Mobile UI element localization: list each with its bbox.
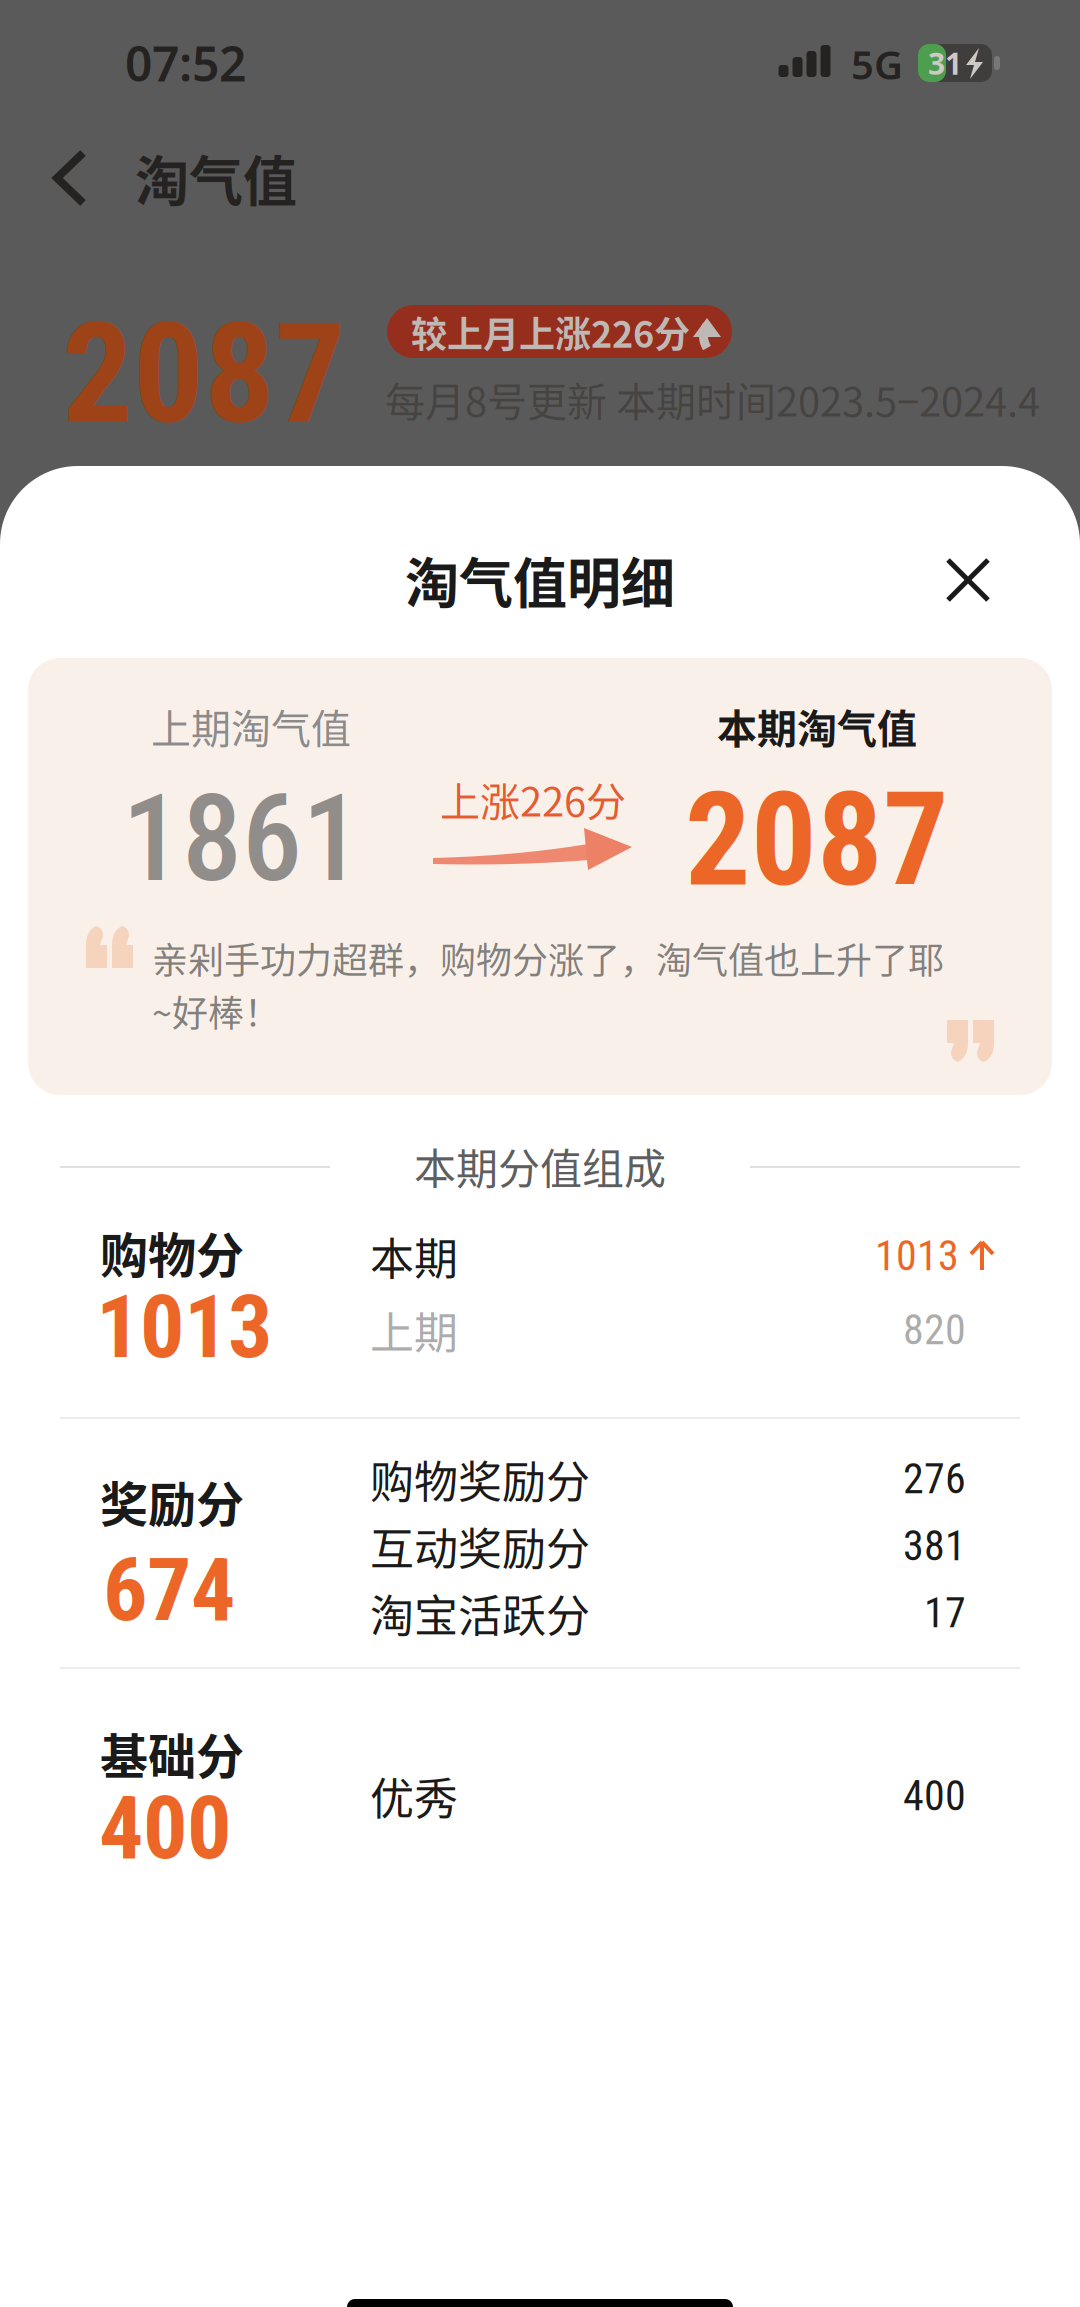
staticText: 上期 [370, 1298, 458, 1362]
staticText: 2087 [685, 764, 949, 916]
staticText: 奖励分 [100, 1466, 244, 1536]
staticText: 淘气值明细 [405, 541, 675, 619]
staticText: 1013 [96, 1275, 272, 1378]
button[interactable]: Back [40, 143, 110, 213]
staticText: 上期淘气值 [151, 697, 351, 755]
button[interactable]: Close [928, 540, 1008, 620]
staticText: ~好棒！ [152, 985, 280, 1037]
staticText: 淘气值 [135, 139, 297, 217]
staticText: 1861 [122, 769, 362, 909]
staticText: 400 [903, 1771, 966, 1821]
staticText: 基础分 [100, 1718, 244, 1788]
staticText: 本期 [370, 1224, 458, 1288]
staticText: 400 [99, 1776, 231, 1879]
staticText: 互动奖励分 [370, 1514, 590, 1578]
staticText: 较上月上涨226分 [411, 306, 690, 358]
staticText: 优秀 [370, 1764, 458, 1828]
staticText: 上涨226分 [440, 770, 626, 828]
staticText: 31 [928, 43, 962, 83]
staticText: 5G [851, 37, 903, 91]
staticText: 381 [903, 1521, 966, 1571]
staticText: 亲剁手功力超群，购物分涨了，淘气值也上升了耶 [152, 932, 944, 984]
staticText: 购物奖励分 [370, 1447, 590, 1511]
staticText: 820 [903, 1305, 966, 1355]
staticText: 17 [924, 1588, 966, 1638]
staticText: 07:52 [125, 30, 246, 96]
staticText: 1013 [875, 1231, 959, 1281]
staticText: 276 [903, 1454, 966, 1504]
staticText: 每月8号更新 本期时间2023.5−2024.4 [385, 370, 1040, 428]
staticText: 本期分值组成 [414, 1136, 666, 1196]
staticText: 674 [103, 1538, 235, 1641]
staticText: 2087 [62, 292, 346, 456]
staticText: 淘宝活跃分 [370, 1581, 590, 1645]
staticText: 本期淘气值 [717, 697, 917, 755]
staticText: 购物分 [100, 1217, 244, 1287]
